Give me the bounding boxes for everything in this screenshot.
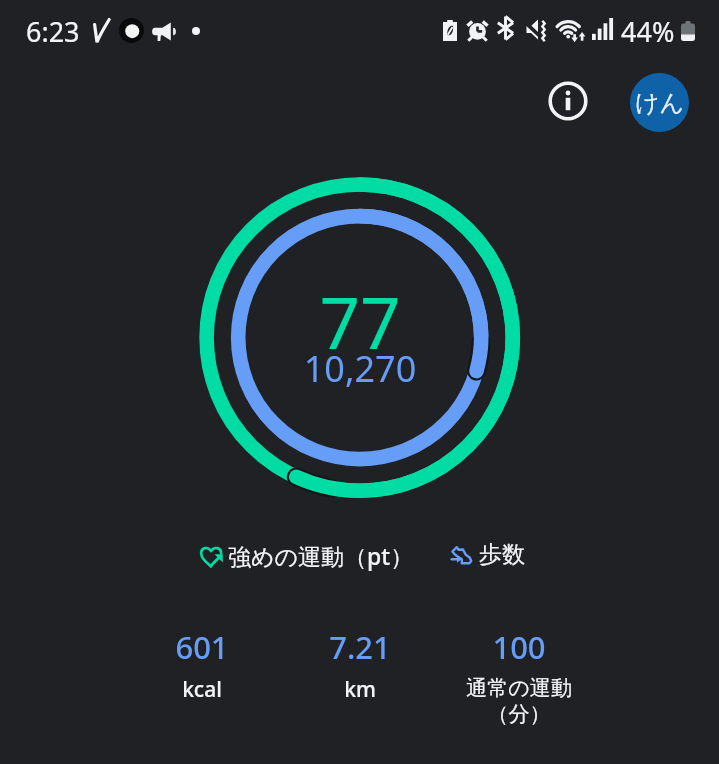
staticText: 601 bbox=[62, 626, 342, 668]
button[interactable]: 強めの運動（pt） bbox=[200, 540, 414, 571]
button[interactable]: Info bbox=[545, 78, 591, 124]
button[interactable]: Profile bbox=[630, 73, 689, 132]
staticText: 10,270 bbox=[160, 344, 560, 393]
staticText: 通常の運動 （分） bbox=[379, 675, 659, 728]
staticText: 強めの運動（pt） bbox=[228, 540, 414, 571]
staticText: 6:23 bbox=[26, 13, 80, 50]
staticText: けん bbox=[635, 88, 685, 118]
button[interactable]: 歩数 bbox=[451, 540, 525, 569]
staticText: 77 bbox=[160, 273, 560, 370]
staticText: 44% bbox=[621, 13, 675, 50]
staticText: 100 bbox=[379, 626, 659, 668]
button[interactable]: 601 bbox=[62, 626, 342, 730]
staticText: kcal bbox=[62, 675, 342, 704]
button[interactable]: 7.21 bbox=[220, 626, 500, 730]
staticText: 歩数 bbox=[479, 540, 525, 569]
button[interactable]: 100 bbox=[379, 626, 659, 730]
button[interactable]: Daily goal rings bbox=[197, 175, 523, 501]
staticText: km bbox=[220, 675, 500, 704]
staticText: 7.21 bbox=[220, 626, 500, 668]
